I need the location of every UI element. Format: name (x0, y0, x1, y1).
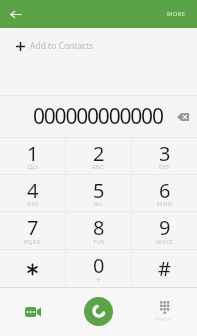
staticText: 2 (93, 140, 105, 167)
staticText: MNO (157, 200, 173, 208)
staticText: 000000000000 (33, 102, 163, 131)
staticText: GHI (27, 200, 39, 208)
staticText: 9 (159, 214, 171, 241)
button[interactable]: 7 (0, 212, 65, 249)
staticText: 8 (93, 214, 105, 241)
staticText: 5 (93, 177, 105, 204)
button[interactable]: # (132, 250, 197, 287)
button[interactable]: 1 (0, 138, 65, 174)
button[interactable]: MORE (156, 4, 197, 24)
button[interactable]: 9 (132, 212, 197, 249)
button[interactable]: 0 (66, 250, 131, 287)
staticText: WXYZ (156, 238, 173, 246)
button[interactable]: 2 (66, 138, 131, 174)
staticText: Keypad (155, 316, 173, 323)
staticText: 7 (27, 214, 39, 241)
staticText: 3 (159, 140, 171, 167)
staticText: 6 (159, 177, 171, 204)
staticText: Add to Contacts (30, 40, 94, 52)
staticText: 0 (93, 252, 105, 279)
button[interactable]: 3 (132, 138, 197, 174)
button[interactable]: Backspace (172, 106, 194, 128)
button[interactable]: 6 (132, 175, 197, 211)
button[interactable]: 8 (66, 212, 131, 249)
button[interactable]: Video call (0, 288, 65, 336)
button[interactable]: 4 (0, 175, 65, 211)
staticText: TUV (93, 238, 105, 246)
button[interactable]: Add to Contacts (0, 28, 197, 64)
staticText: MORE (167, 10, 186, 18)
button[interactable]: Back (5, 4, 25, 24)
staticText: + (96, 274, 101, 285)
staticText: # (158, 255, 171, 282)
button[interactable]: Keypad (131, 288, 197, 336)
button[interactable]: 5 (66, 175, 131, 211)
staticText: JKL (94, 200, 104, 208)
staticText: 4 (27, 177, 39, 204)
button[interactable] (0, 250, 65, 287)
staticText: DEF (159, 163, 171, 171)
staticText: 1 (27, 140, 39, 167)
button[interactable]: Call (65, 288, 131, 336)
staticText: PQRS (24, 238, 41, 246)
staticText: ABC (92, 163, 105, 171)
